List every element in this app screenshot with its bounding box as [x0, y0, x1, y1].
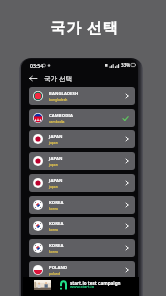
- staticText: japan: [49, 140, 58, 144]
- button[interactable]: CAMBODIA: [29, 109, 135, 127]
- staticText: japan: [49, 162, 58, 166]
- staticText: start.io test campaign: [70, 280, 121, 286]
- staticText: JAPAN: [49, 156, 63, 162]
- staticText: CAMBODIA: [49, 113, 74, 119]
- staticText: poland: [49, 271, 60, 275]
- staticText: japan: [49, 184, 58, 188]
- button[interactable]: KOREA: [29, 196, 135, 214]
- button[interactable]: JAPAN: [29, 130, 135, 148]
- staticText: korea: [49, 206, 58, 210]
- button[interactable]: JAPAN: [29, 174, 135, 192]
- staticText: JAPAN: [49, 134, 63, 140]
- staticText: cambodia: [49, 119, 65, 123]
- staticText: bangladesh: [49, 97, 68, 101]
- button[interactable]: POLAND: [29, 261, 135, 279]
- button[interactable]: JAPAN: [29, 152, 135, 170]
- staticText: www.start.io: [70, 284, 95, 290]
- staticText: 국가 선택: [44, 74, 73, 83]
- button[interactable]: KOREA: [29, 217, 135, 235]
- button[interactable]: BANGLADESH: [29, 87, 135, 105]
- staticText: BANGLADESH: [49, 91, 79, 97]
- staticText: JAPAN: [49, 178, 63, 184]
- staticText: KOREA: [49, 243, 64, 249]
- staticText: korea: [49, 249, 58, 253]
- staticText: 33%: [121, 62, 131, 68]
- staticText: korea: [49, 227, 58, 231]
- staticText: KOREA: [49, 200, 64, 206]
- button[interactable]: start.io test campaign: [23, 277, 139, 296]
- staticText: POLAND: [49, 265, 68, 271]
- staticText: 03:54: [30, 62, 44, 69]
- staticText: 국가 선택: [50, 17, 119, 37]
- button[interactable]: Back: [27, 73, 38, 84]
- staticText: KOREA: [49, 221, 64, 227]
- button[interactable]: KOREA: [29, 239, 135, 257]
